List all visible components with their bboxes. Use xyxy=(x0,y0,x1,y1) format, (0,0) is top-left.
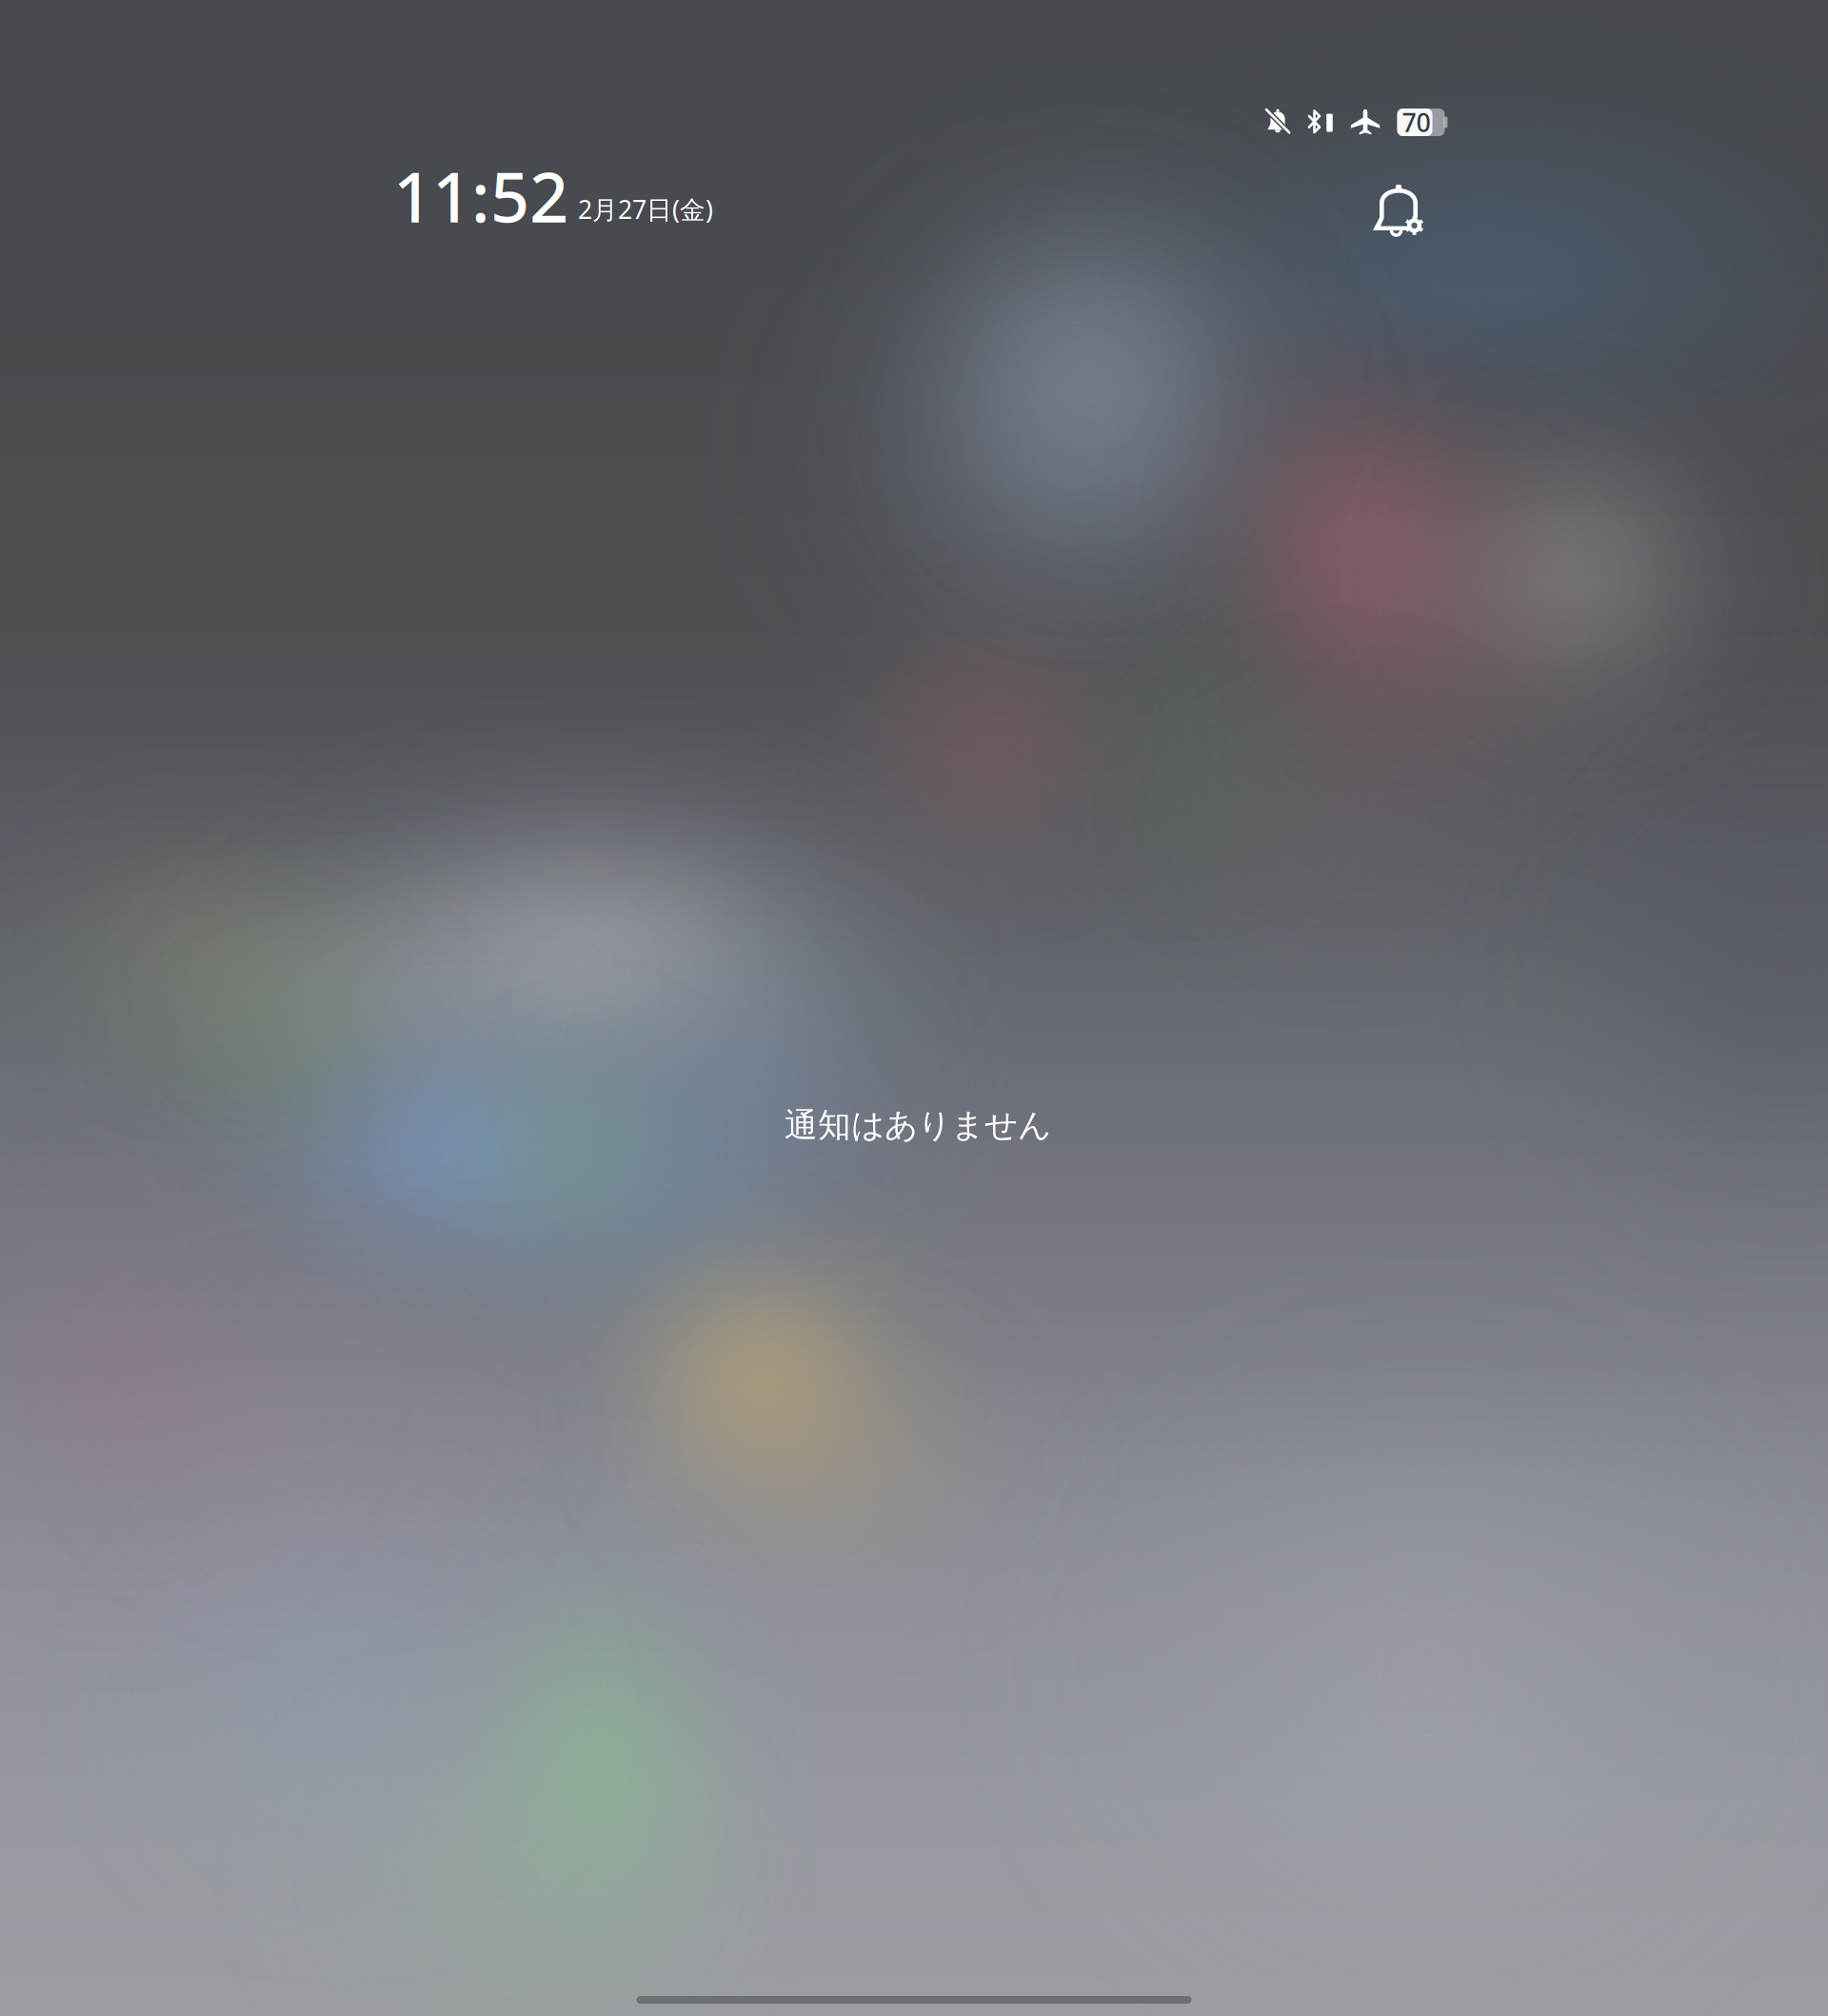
staticText: 70 xyxy=(1402,105,1431,139)
button[interactable]: Notification settings xyxy=(1363,176,1434,247)
staticText: 2月27日(金) xyxy=(578,192,713,226)
staticText: 通知はありません xyxy=(785,1105,1051,1146)
staticText: 11:52 xyxy=(393,150,568,241)
